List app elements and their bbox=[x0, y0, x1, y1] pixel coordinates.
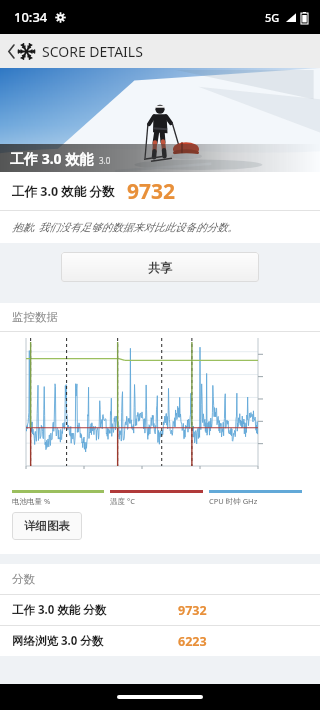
staticText: 详细图表 bbox=[24, 519, 70, 533]
button[interactable]: 工作 3.0 效能 分数 bbox=[0, 172, 320, 210]
staticText: 共享 bbox=[148, 260, 172, 275]
staticText: 监控数据 bbox=[12, 310, 58, 324]
staticText: 工作 3.0 效能 bbox=[10, 149, 94, 168]
staticText: 抱歉, 我们没有足够的数据来对比此设备的分数。 bbox=[12, 220, 238, 234]
staticText: 网络浏览 3.0 分数 bbox=[12, 633, 104, 649]
staticText: 6223 bbox=[178, 633, 207, 650]
staticText: 10:34 bbox=[14, 8, 48, 26]
staticText: SCORE DETAILS bbox=[42, 42, 143, 61]
staticText: 工作 3.0 效能 分数 bbox=[12, 183, 115, 200]
button[interactable]: 网络浏览 3.0 分数 bbox=[0, 626, 320, 656]
staticText: 温度 °C bbox=[110, 496, 135, 506]
staticText: 工作 3.0 效能 分数 bbox=[12, 602, 107, 618]
staticText: 9732 bbox=[178, 602, 207, 619]
button[interactable]: 共享 bbox=[61, 252, 259, 282]
button[interactable]: 详细图表 bbox=[12, 512, 82, 540]
staticText: 电池电量 % bbox=[12, 496, 51, 506]
staticText: 分数 bbox=[12, 572, 35, 586]
staticText: CPU 时钟 GHz bbox=[209, 496, 258, 506]
button[interactable]: Back bbox=[4, 36, 18, 66]
staticText: 5G bbox=[265, 10, 280, 25]
staticText: 9732 bbox=[127, 177, 176, 206]
button[interactable]: 工作 3.0 效能 分数 bbox=[0, 595, 320, 625]
staticText: 3.0 bbox=[99, 155, 111, 166]
